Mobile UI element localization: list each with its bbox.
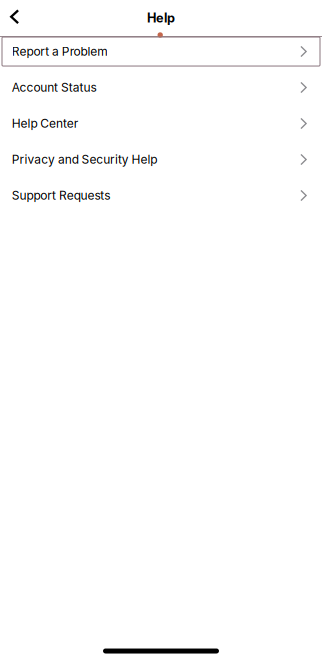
button[interactable]: Report a Problem (0, 37, 322, 66)
button[interactable]: Account Status (0, 73, 322, 102)
staticText: Help (147, 10, 175, 26)
button[interactable]: Back (0, 0, 29, 36)
button[interactable]: Support Requests (0, 181, 322, 210)
staticText: Help Center (12, 116, 79, 131)
staticText: Account Status (12, 80, 96, 95)
button[interactable]: Privacy and Security Help (0, 145, 322, 174)
staticText: Report a Problem (12, 44, 108, 59)
button[interactable]: Help Center (0, 109, 322, 138)
staticText: Support Requests (12, 188, 110, 203)
staticText: Privacy and Security Help (12, 152, 157, 167)
